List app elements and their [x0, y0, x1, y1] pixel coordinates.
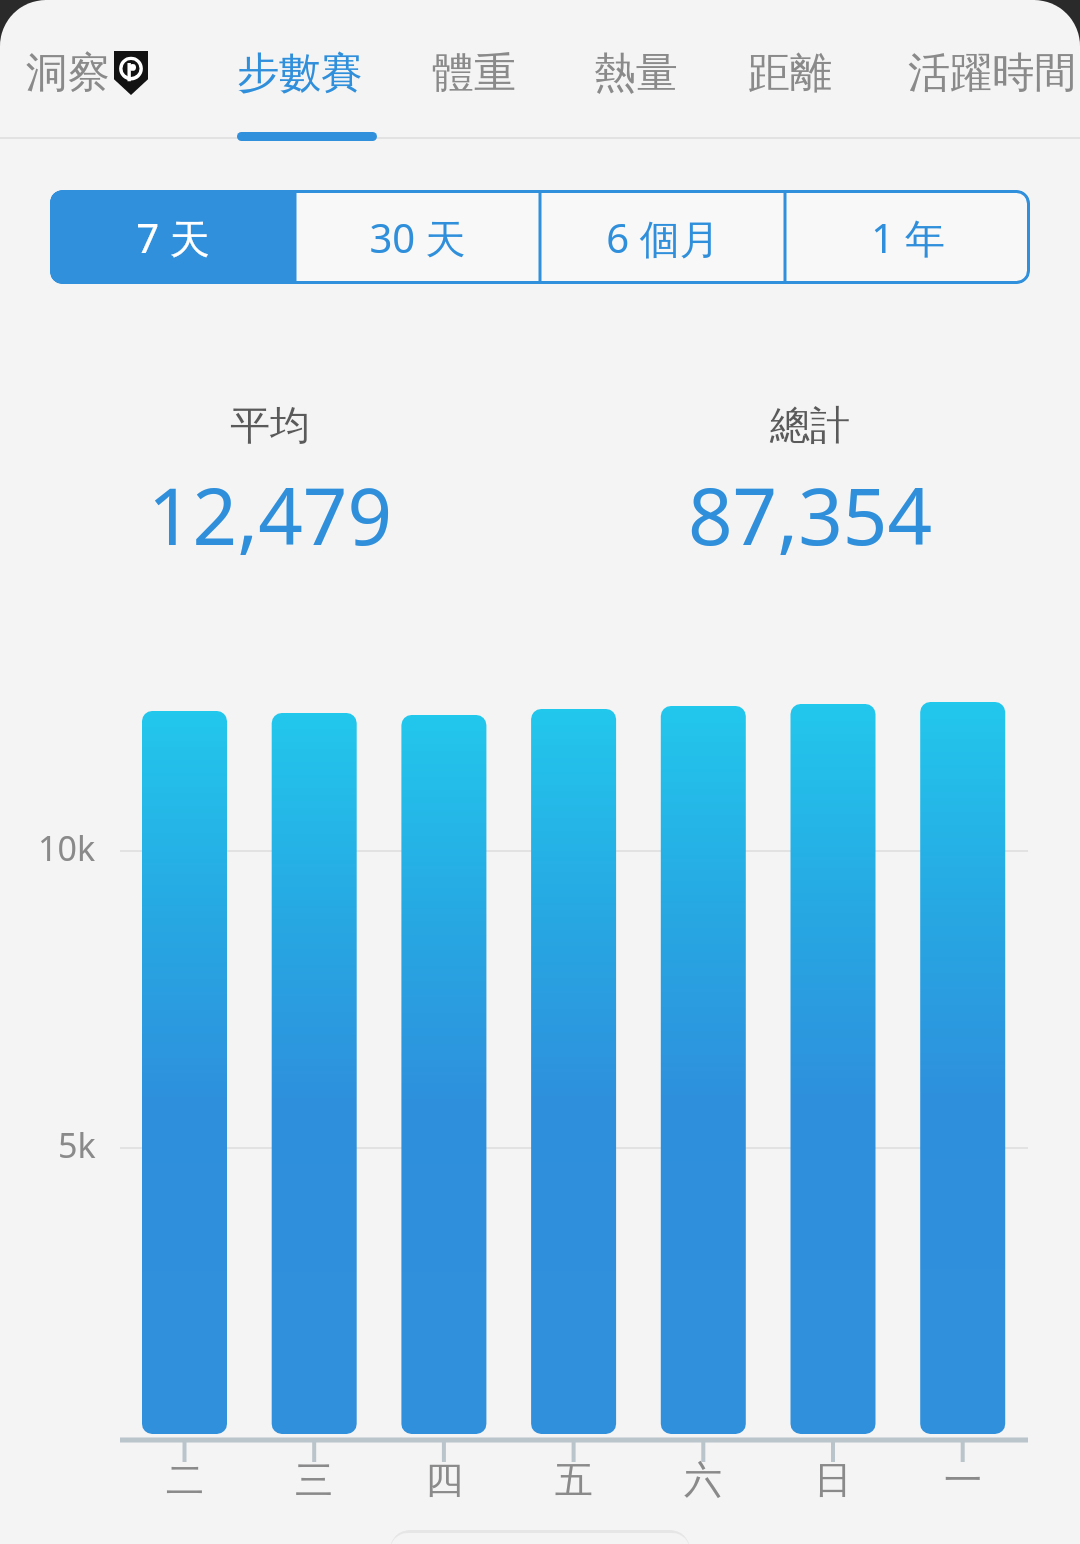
- staticText: 一: [944, 1456, 982, 1504]
- button[interactable]: 洞察: [26, 24, 186, 122]
- staticText: 日: [814, 1456, 852, 1504]
- staticText: 7 天: [136, 210, 210, 265]
- staticText: 平均: [230, 400, 310, 450]
- other: Insights badge: [114, 51, 148, 95]
- staticText: 三: [295, 1456, 333, 1504]
- staticText: 熱量: [594, 47, 678, 100]
- button[interactable]: 步數賽: [237, 24, 377, 122]
- staticText: 二: [166, 1456, 204, 1504]
- staticText: 五: [555, 1456, 593, 1504]
- staticText: 10k: [38, 825, 96, 871]
- staticText: 總計: [770, 400, 850, 450]
- staticText: 5k: [58, 1122, 96, 1168]
- button[interactable]: 熱量: [594, 24, 698, 122]
- staticText: 1 年: [871, 210, 945, 265]
- button[interactable]: 距離: [748, 24, 852, 122]
- staticText: 六: [684, 1456, 722, 1504]
- button[interactable]: 1 年: [785, 190, 1030, 284]
- staticText: 87,354: [688, 462, 932, 568]
- button[interactable]: 6 個月: [540, 190, 785, 284]
- staticText: 步數賽: [237, 47, 363, 100]
- staticText: 30 天: [369, 210, 466, 265]
- staticText: 12,479: [148, 462, 392, 568]
- button[interactable]: 30 天: [295, 190, 540, 284]
- button[interactable]: 活躍時間: [908, 24, 1080, 122]
- staticText: 洞察: [26, 47, 110, 100]
- button[interactable]: 體重: [432, 24, 536, 122]
- button[interactable]: 7 天: [50, 190, 295, 284]
- staticText: 6 個月: [606, 210, 720, 265]
- staticText: 距離: [748, 47, 832, 100]
- staticText: 體重: [432, 47, 516, 100]
- staticText: 四: [425, 1456, 463, 1504]
- staticText: 活躍時間: [908, 47, 1076, 100]
